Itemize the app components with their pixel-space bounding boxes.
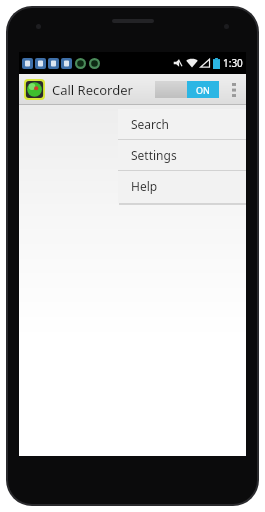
button[interactable]: Call Recorder app icon (24, 79, 45, 100)
button[interactable]: More options (227, 77, 241, 103)
button[interactable]: Search (118, 109, 246, 139)
staticText: Search (131, 116, 169, 132)
staticText: Call Recorder (52, 81, 133, 99)
staticText: 1:30 (223, 56, 243, 70)
staticText: ON (196, 84, 210, 96)
button[interactable]: Recording enabled toggle, ON (155, 81, 219, 98)
button[interactable]: Help (118, 171, 246, 201)
staticText: Help (131, 178, 158, 194)
staticText: Settings (131, 147, 177, 163)
button[interactable]: Settings (118, 140, 246, 170)
